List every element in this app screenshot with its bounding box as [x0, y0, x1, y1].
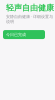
staticText: 轻声自由健康 — [6, 3, 54, 13]
staticText: 安静自由健康 · 详细设置与说明 — [6, 14, 53, 24]
staticText: 今日已完成 — [6, 32, 26, 37]
